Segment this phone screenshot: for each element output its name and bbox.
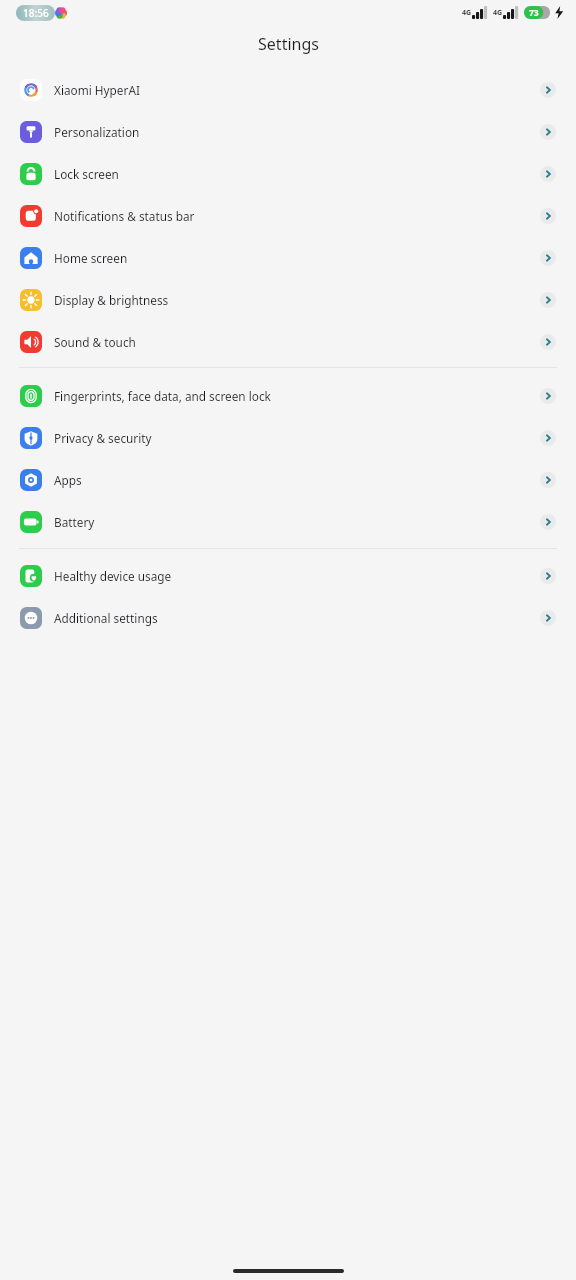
staticText: Battery — [54, 514, 95, 530]
button[interactable]: Lock screen — [0, 153, 576, 195]
button[interactable]: Display & brightness — [0, 279, 576, 321]
button[interactable]: Sound & touch — [0, 321, 576, 363]
staticText: Fingerprints, face data, and screen lock — [54, 388, 271, 404]
button[interactable]: Apps — [0, 459, 576, 501]
staticText: 18:56 — [23, 6, 49, 20]
button[interactable]: Additional settings — [0, 597, 576, 639]
staticText: Lock screen — [54, 166, 119, 182]
staticText: 73 — [529, 7, 539, 19]
staticText: 4G — [493, 8, 503, 18]
button[interactable]: Battery — [0, 501, 576, 543]
button[interactable]: Xiaomi HyperAI — [0, 69, 576, 111]
button[interactable]: Healthy device usage — [0, 555, 576, 597]
staticText: Personalization — [54, 124, 140, 140]
staticText: Healthy device usage — [54, 568, 172, 584]
staticText: 4G — [462, 8, 472, 18]
staticText: Xiaomi HyperAI — [54, 82, 140, 98]
staticText: Settings — [258, 33, 319, 55]
button[interactable]: Home screen — [0, 237, 576, 279]
staticText: Home screen — [54, 250, 128, 266]
staticText: Sound & touch — [54, 334, 136, 350]
button[interactable]: Privacy & security — [0, 417, 576, 459]
staticText: Display & brightness — [54, 292, 169, 308]
button[interactable]: Fingerprints, face data, and screen lock — [0, 375, 576, 417]
button[interactable]: Personalization — [0, 111, 576, 153]
staticText: Privacy & security — [54, 430, 152, 446]
staticText: Additional settings — [54, 610, 158, 626]
button[interactable]: Notifications & status bar — [0, 195, 576, 237]
staticText: Notifications & status bar — [54, 208, 195, 224]
staticText: Apps — [54, 472, 82, 488]
